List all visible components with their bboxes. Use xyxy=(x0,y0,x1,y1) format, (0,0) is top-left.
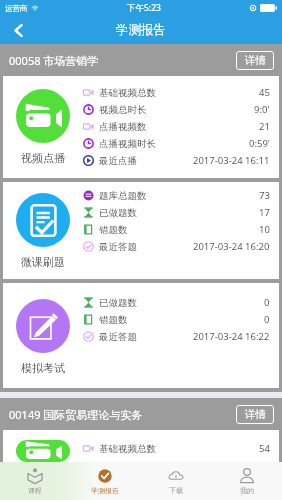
staticText: 学测报告 xyxy=(116,22,166,38)
staticText: 2017-03-24 16:11 xyxy=(193,154,270,167)
staticText: 0 xyxy=(264,296,270,309)
staticText: 10 xyxy=(259,223,270,236)
staticText: 视频点播 xyxy=(21,151,65,165)
staticText: 课程 xyxy=(28,486,42,495)
button[interactable]: 我的 xyxy=(211,462,282,500)
staticText: 点播视频时长 xyxy=(99,138,156,150)
staticText: 0 xyxy=(264,313,270,326)
staticText: 视频总时长 xyxy=(99,104,147,116)
button[interactable]: 课程 xyxy=(0,462,70,500)
staticText: 已做题数 xyxy=(99,207,137,219)
staticText: 00149 国际贸易理论与实务 xyxy=(9,407,143,422)
button[interactable]: 详情 xyxy=(236,51,274,70)
staticText: 00058 市场营销学 xyxy=(9,53,99,68)
button[interactable]: 下载 xyxy=(140,462,211,500)
staticText: 2017-03-24 16:20 xyxy=(193,240,270,253)
staticText: 学测报告 xyxy=(91,486,119,495)
staticText: 错题数 xyxy=(99,314,128,326)
staticText: 基础视频总数 xyxy=(99,87,156,99)
staticText: 模拟考试 xyxy=(21,361,65,375)
staticText: 最近答题 xyxy=(99,241,137,253)
staticText: 错题数 xyxy=(99,224,128,236)
staticText: 54 xyxy=(259,442,270,455)
staticText: 详情 xyxy=(245,54,266,67)
staticText: 最近答题 xyxy=(99,331,137,343)
button[interactable]: 微课刷题 xyxy=(16,193,70,247)
button[interactable]: Back xyxy=(0,16,36,44)
staticText: 17 xyxy=(259,206,270,219)
staticText: 下午5:23 xyxy=(127,2,161,14)
button[interactable]: 学测报告 xyxy=(70,462,140,500)
staticText: 题库总题数 xyxy=(99,190,147,202)
staticText: 运营商 xyxy=(5,4,28,13)
staticText: 45 xyxy=(259,86,270,99)
staticText: 点播视频数 xyxy=(99,121,147,133)
staticText: 最近点播 xyxy=(99,155,137,167)
staticText: 0:59' xyxy=(249,137,270,150)
staticText: 21 xyxy=(259,120,270,133)
staticText: 2017-03-24 16:22 xyxy=(193,330,270,343)
button[interactable]: 视频点播 xyxy=(16,89,70,143)
button[interactable]: 模拟考试 xyxy=(16,299,70,353)
staticText: 基础视频总数 xyxy=(99,443,156,455)
staticText: 已做题数 xyxy=(99,297,137,309)
staticText: 下载 xyxy=(169,486,183,495)
staticText: 9:0' xyxy=(254,103,270,116)
staticText: 详情 xyxy=(245,408,266,421)
staticText: 73 xyxy=(259,189,270,202)
staticText: 微课刷题 xyxy=(21,255,65,269)
button[interactable]: 详情 xyxy=(236,405,274,424)
staticText: 我的 xyxy=(240,486,254,495)
